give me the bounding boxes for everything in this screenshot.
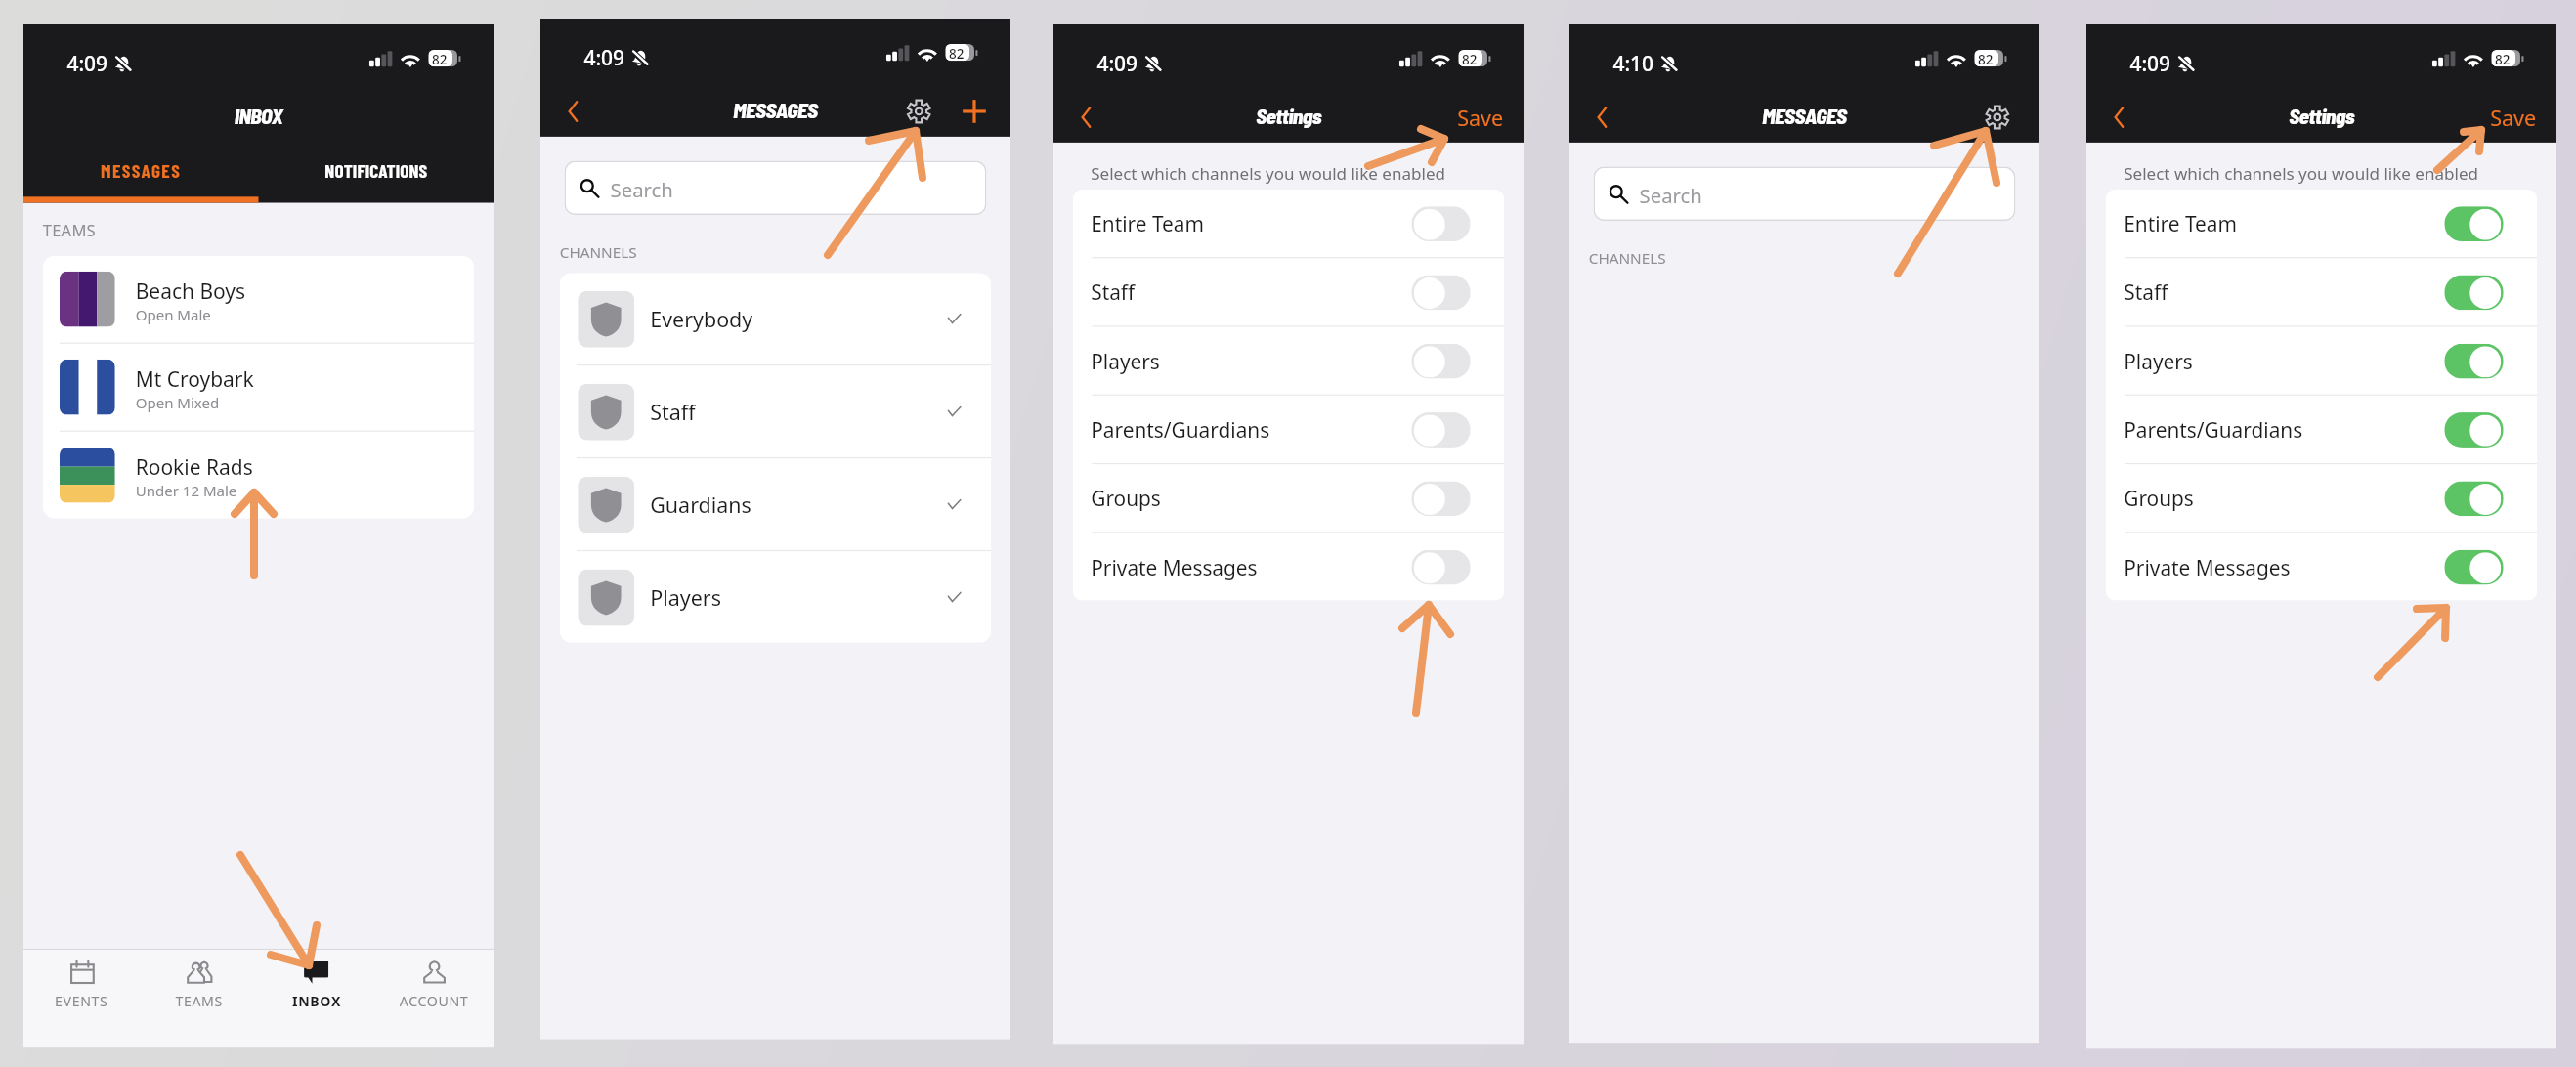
button[interactable]: [1411, 412, 1470, 447]
staticText: Guardians: [650, 490, 752, 519]
staticText: 4:09: [2130, 50, 2171, 77]
button[interactable]: [1411, 206, 1470, 241]
button[interactable]: Parents/Guardians: [2106, 396, 2537, 463]
button[interactable]: Search: [1595, 168, 2014, 220]
button[interactable]: New message: [955, 88, 994, 134]
button[interactable]: Search: [566, 162, 985, 214]
staticText: Settings: [1256, 104, 1322, 129]
staticText: 82: [2495, 50, 2511, 67]
button[interactable]: Private Messages: [1073, 533, 1504, 601]
button[interactable]: ACCOUNT: [375, 950, 494, 1008]
button[interactable]: Staff: [560, 366, 991, 457]
staticText: Search: [1639, 181, 1703, 208]
button[interactable]: [2444, 275, 2503, 310]
staticText: 82: [1978, 50, 1994, 67]
button[interactable]: [1411, 275, 1470, 310]
staticText: Open Mixed: [136, 393, 220, 414]
button[interactable]: [1411, 550, 1470, 585]
staticText: Players: [650, 583, 721, 611]
staticText: Search: [610, 175, 674, 202]
button[interactable]: MESSAGES: [23, 143, 258, 197]
staticText: MESSAGES: [101, 158, 181, 181]
button[interactable]: NOTIFICATIONS: [258, 143, 494, 197]
staticText: Staff: [650, 397, 696, 426]
button[interactable]: [2444, 412, 2503, 447]
button[interactable]: Entire Team: [2106, 190, 2537, 257]
staticText: 4:09: [1097, 50, 1138, 77]
staticText: Open Male: [136, 305, 211, 326]
staticText: Entire Team: [1091, 210, 1204, 238]
button[interactable]: Players: [1073, 327, 1504, 394]
button[interactable]: [2444, 550, 2503, 585]
button[interactable]: [2444, 481, 2503, 516]
staticText: Select which channels you would like ena…: [1091, 162, 1446, 185]
staticText: NOTIFICATIONS: [325, 158, 428, 181]
button[interactable]: Beach Boys: [43, 256, 474, 343]
staticText: EVENTS: [55, 992, 109, 1008]
staticText: Private Messages: [2124, 553, 2291, 581]
button[interactable]: Save: [2490, 103, 2537, 132]
button[interactable]: [1411, 344, 1470, 379]
staticText: Rookie Rads: [136, 453, 254, 481]
staticText: Players: [2124, 347, 2194, 375]
staticText: Everybody: [650, 304, 754, 333]
staticText: ACCOUNT: [399, 992, 469, 1008]
button[interactable]: Parents/Guardians: [1073, 396, 1504, 463]
staticText: INBOX: [234, 104, 283, 129]
button[interactable]: INBOX: [257, 950, 375, 1008]
button[interactable]: Save: [1457, 103, 1504, 132]
staticText: INBOX: [292, 992, 342, 1008]
staticText: 4:09: [67, 50, 108, 77]
button[interactable]: Mt Croybark: [43, 344, 474, 431]
staticText: Mt Croybark: [136, 365, 255, 393]
staticText: Settings: [2289, 104, 2355, 129]
staticText: 82: [432, 50, 448, 67]
button[interactable]: Everybody: [560, 273, 991, 364]
staticText: Select which channels you would like ena…: [2124, 162, 2479, 185]
button[interactable]: Back: [1583, 97, 1620, 138]
button[interactable]: [2444, 344, 2503, 379]
button[interactable]: TEAMS: [140, 950, 257, 1008]
staticText: 82: [1462, 50, 1478, 67]
staticText: Beach Boys: [136, 277, 246, 305]
staticText: MESSAGES: [1762, 104, 1847, 129]
staticText: Private Messages: [1091, 553, 1258, 581]
staticText: MESSAGES: [733, 98, 818, 123]
staticText: TEAMS: [43, 220, 96, 241]
staticText: Groups: [1091, 485, 1162, 512]
button[interactable]: [2444, 206, 2503, 241]
staticText: Save: [1457, 103, 1504, 132]
button[interactable]: Staff: [2106, 258, 2537, 326]
staticText: Players: [1091, 347, 1161, 375]
button[interactable]: Settings: [1978, 94, 2017, 140]
staticText: CHANNELS: [1589, 249, 1666, 269]
staticText: Groups: [2124, 485, 2195, 512]
button[interactable]: [1411, 481, 1470, 516]
button[interactable]: EVENTS: [23, 950, 140, 1008]
button[interactable]: Private Messages: [2106, 533, 2537, 601]
button[interactable]: Rookie Rads: [43, 432, 474, 519]
staticText: TEAMS: [175, 992, 223, 1008]
staticText: 4:09: [584, 44, 625, 72]
button[interactable]: Staff: [1073, 258, 1504, 326]
staticText: Save: [2490, 103, 2537, 132]
button[interactable]: Entire Team: [1073, 190, 1504, 257]
button[interactable]: Back: [554, 91, 591, 132]
button[interactable]: Guardians: [560, 458, 991, 550]
staticText: Parents/Guardians: [2124, 416, 2303, 444]
staticText: Staff: [2124, 279, 2168, 306]
button[interactable]: Back: [2100, 97, 2137, 138]
button[interactable]: Players: [560, 551, 991, 643]
staticText: Under 12 Male: [136, 481, 238, 502]
button[interactable]: Players: [2106, 327, 2537, 394]
staticText: 82: [949, 44, 965, 61]
button[interactable]: Groups: [2106, 464, 2537, 532]
button[interactable]: Back: [1067, 97, 1104, 138]
staticText: CHANNELS: [560, 243, 637, 263]
button[interactable]: Groups: [1073, 464, 1504, 532]
staticText: 4:10: [1613, 50, 1654, 77]
staticText: Parents/Guardians: [1091, 416, 1270, 444]
button[interactable]: Settings: [900, 88, 938, 134]
staticText: Entire Team: [2124, 210, 2237, 238]
staticText: Staff: [1091, 279, 1135, 306]
